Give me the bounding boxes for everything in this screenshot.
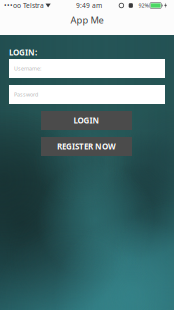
staticText: Username: bbox=[14, 65, 41, 72]
button[interactable]: REGISTER NOW bbox=[41, 137, 132, 156]
staticText: 92% bbox=[138, 2, 148, 9]
staticText: App Me bbox=[70, 14, 103, 26]
button[interactable]: LOGIN bbox=[41, 111, 132, 130]
staticText: Password bbox=[14, 91, 38, 98]
staticText: LOGIN bbox=[73, 115, 99, 126]
staticText: •••oo Telstra bbox=[4, 1, 44, 10]
staticText: LOGIN: bbox=[9, 47, 37, 58]
staticText: REGISTER NOW bbox=[57, 141, 116, 152]
staticText: 9:49 am bbox=[76, 1, 102, 10]
